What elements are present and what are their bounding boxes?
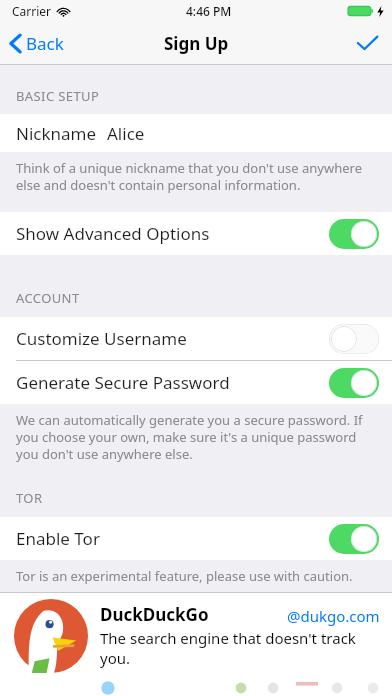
button[interactable]: Back bbox=[0, 26, 76, 61]
staticText: DuckDuckGo bbox=[100, 603, 209, 626]
staticText: 4:46 PM bbox=[186, 3, 232, 19]
staticText: Alice bbox=[107, 122, 145, 145]
staticText: Generate Secure Password bbox=[16, 371, 230, 394]
staticText: Enable Tor bbox=[16, 527, 100, 550]
button[interactable]: Enable Tor bbox=[0, 517, 392, 560]
staticText: BASIC SETUP bbox=[16, 87, 100, 105]
staticText: @dukgo.com bbox=[287, 606, 380, 626]
staticText: TOR bbox=[16, 489, 43, 507]
staticText: Back bbox=[26, 32, 64, 55]
staticText: Carrier bbox=[12, 3, 52, 19]
staticText: We can automatically generate you a secu… bbox=[16, 411, 376, 463]
staticText: Think of a unique nickname that you don'… bbox=[16, 159, 376, 194]
button[interactable]: Off bbox=[329, 324, 379, 354]
button[interactable]: On bbox=[329, 219, 379, 249]
staticText: Sign Up bbox=[164, 32, 229, 55]
button[interactable]: Confirm bbox=[343, 27, 392, 59]
button[interactable]: Show Advanced Options bbox=[0, 212, 392, 255]
staticText: Show Advanced Options bbox=[16, 222, 210, 245]
button[interactable]: Customize Username bbox=[0, 317, 392, 360]
staticText: Customize Username bbox=[16, 327, 187, 350]
button[interactable]: Generate Secure Password bbox=[0, 361, 392, 404]
staticText: Nickname bbox=[16, 122, 97, 145]
button[interactable]: On bbox=[329, 524, 379, 554]
button[interactable]: On bbox=[329, 368, 379, 398]
button[interactable]: Nickname bbox=[0, 114, 392, 152]
button[interactable]: DuckDuckGo bbox=[0, 593, 392, 696]
staticText: The search engine that doesn't track you… bbox=[100, 628, 380, 668]
staticText: ACCOUNT bbox=[16, 289, 80, 307]
staticText: Tor is an experimental feature, please u… bbox=[16, 567, 353, 585]
